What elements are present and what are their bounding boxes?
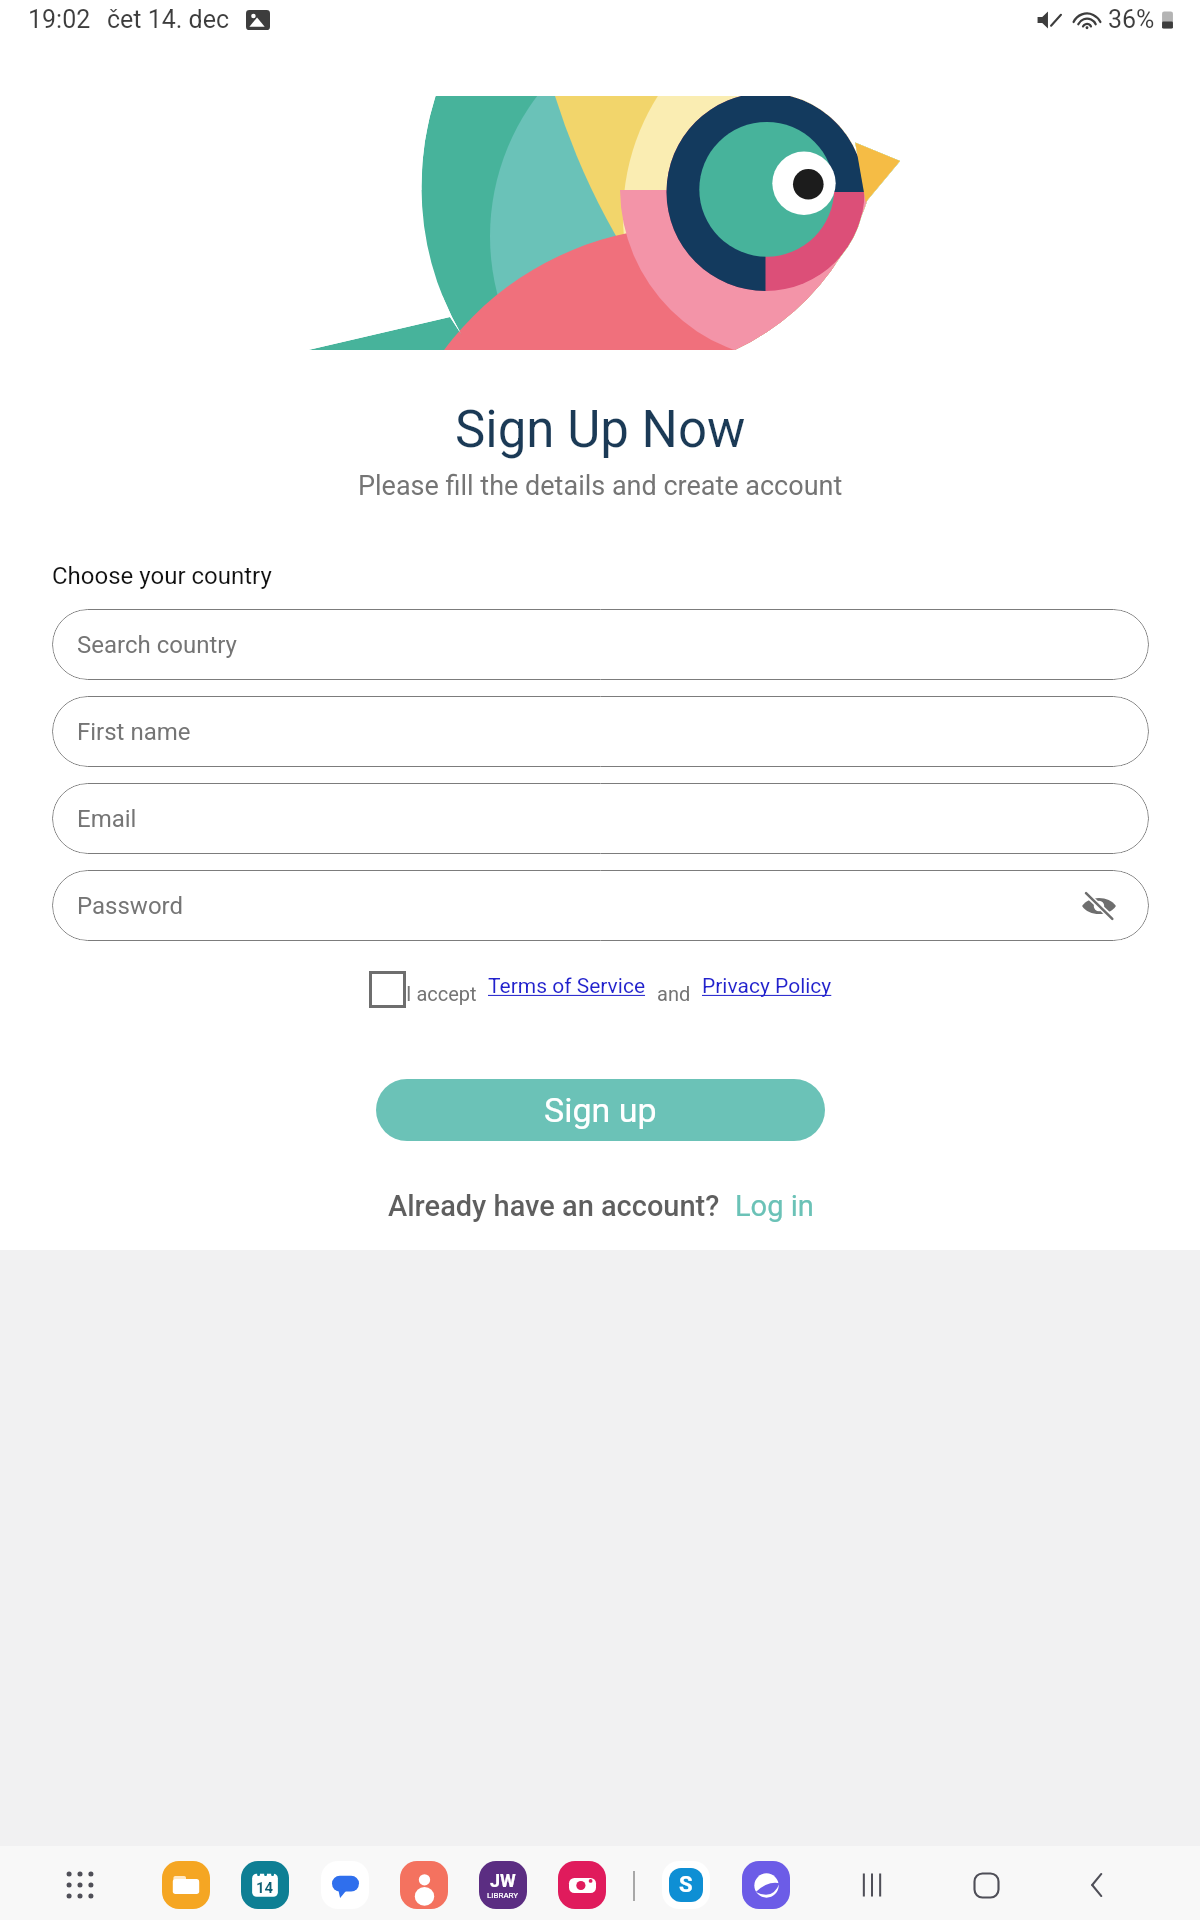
staticText: Sign Up Now xyxy=(455,400,746,460)
staticText: Terms of Service xyxy=(488,974,646,999)
button[interactable]: Password xyxy=(52,870,1149,941)
button[interactable]: Contacts xyxy=(400,1861,448,1909)
staticText: Please fill the details and create accou… xyxy=(358,470,843,502)
button[interactable]: Calendar xyxy=(241,1861,289,1909)
staticText: First name xyxy=(77,718,191,746)
button[interactable]: Camera xyxy=(558,1861,606,1909)
staticText: Search country xyxy=(77,631,237,659)
staticText: LIBRARY xyxy=(487,1891,519,1900)
staticText: 36% xyxy=(1108,5,1155,34)
staticText: Email xyxy=(77,805,137,833)
button[interactable]: Log in xyxy=(735,1189,814,1223)
staticText: S xyxy=(679,1872,693,1898)
button[interactable]: Search country xyxy=(52,609,1149,680)
staticText: Password xyxy=(77,892,184,920)
staticText: and xyxy=(657,982,691,1005)
button[interactable]: Home xyxy=(954,1853,1018,1917)
button[interactable]: Apps xyxy=(56,1861,104,1909)
staticText: Sign up xyxy=(544,1090,657,1130)
button[interactable]: Privacy Policy xyxy=(702,974,832,1008)
staticText: I accept xyxy=(406,982,477,1005)
button[interactable]: First name xyxy=(52,696,1149,767)
staticText: Log in xyxy=(735,1189,814,1223)
button[interactable]: Browser xyxy=(742,1861,790,1909)
button[interactable]: Messages xyxy=(321,1861,369,1909)
button[interactable]: Recents xyxy=(840,1853,904,1917)
button[interactable]: Show password xyxy=(1077,884,1121,928)
staticText: čet 14. dec xyxy=(107,5,230,34)
button[interactable]: Back xyxy=(1065,1853,1129,1917)
staticText: JW xyxy=(490,1870,516,1891)
staticText: Already have an account? xyxy=(388,1189,720,1223)
button[interactable]: Accept terms xyxy=(369,971,406,1008)
button[interactable]: Sign up xyxy=(376,1079,825,1141)
staticText: Privacy Policy xyxy=(702,974,832,999)
staticText: Choose your country xyxy=(52,562,272,590)
button[interactable]: JW Library xyxy=(479,1861,527,1909)
button[interactable]: Skype xyxy=(662,1861,710,1909)
button[interactable]: Email xyxy=(52,783,1149,854)
staticText: 14 xyxy=(256,1879,274,1897)
staticText: 19:02 xyxy=(28,5,91,34)
button[interactable]: Files xyxy=(162,1861,210,1909)
button[interactable]: Terms of Service xyxy=(488,974,646,1008)
